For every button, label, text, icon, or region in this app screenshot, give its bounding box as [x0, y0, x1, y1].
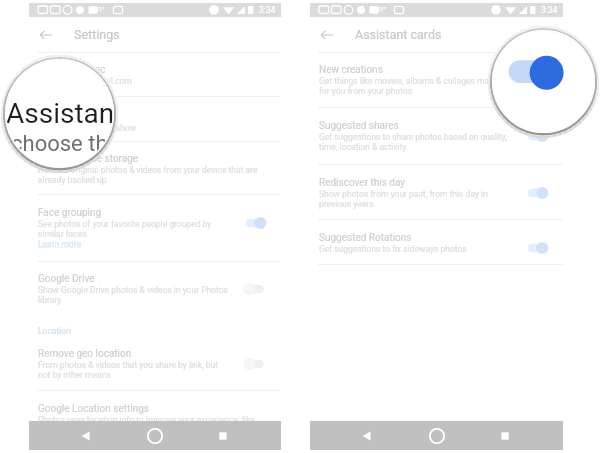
staticText: 3:34: [541, 5, 558, 15]
button[interactable]: Remove geo location: [29, 344, 281, 390]
button[interactable]: Suggested Rotations: [310, 220, 563, 264]
staticText: Get suggestions to fix sideways photos: [319, 244, 467, 254]
staticText: Suggested Rotations: [319, 232, 412, 244]
button[interactable]: Face grouping: [29, 195, 281, 261]
staticText: Remove original photos & videos from you…: [38, 165, 268, 185]
button[interactable]: Navigate up: [34, 23, 58, 47]
staticText: Google Location settings: [38, 403, 149, 415]
staticText: Get things like movies, albums & collage…: [319, 76, 509, 96]
staticText: Settings: [74, 27, 120, 42]
staticText: See photos of your favorite people group…: [38, 219, 228, 239]
staticText: Face grouping: [38, 207, 102, 219]
staticText: Photos uses location info to improve you…: [38, 415, 255, 425]
button[interactable]: Recent apps: [212, 425, 234, 447]
button[interactable]: Navigate up: [315, 23, 339, 47]
staticText: Rediscover this day: [319, 177, 406, 189]
staticText: Remove geo location: [38, 348, 132, 360]
staticText: Location: [38, 326, 71, 336]
staticText: Free up device storage: [38, 153, 139, 165]
staticText: Back up & sync: [38, 64, 106, 76]
button[interactable]: New creations: [310, 53, 563, 107]
staticText: Assistant cards: [355, 27, 442, 42]
staticText: Assistant cards: [38, 111, 108, 123]
button[interactable]: Back: [356, 425, 378, 447]
staticText: Suggested shares: [319, 120, 399, 132]
staticText: Get suggestions to share photos based on…: [319, 132, 509, 152]
button[interactable]: Assistant cards: [29, 97, 281, 141]
staticText: 51°: [95, 6, 105, 14]
button[interactable]: Free up device storage: [29, 142, 281, 194]
button[interactable]: Home: [425, 424, 449, 448]
staticText: ourchildejen@gmail.com: [38, 76, 132, 86]
staticText: Show Google Drive photos & videos in you…: [38, 285, 230, 305]
staticText: 51°: [376, 6, 386, 14]
button[interactable]: Back: [75, 425, 97, 447]
button[interactable]: Rediscover this day: [310, 165, 563, 219]
staticText: Assistant: [6, 97, 115, 163]
staticText: 3:34: [259, 5, 276, 15]
staticText: Learn more: [38, 239, 82, 249]
button[interactable]: Google Drive: [29, 262, 281, 322]
button[interactable]: Back up & sync: [29, 53, 281, 96]
staticText: Choose the cards to show: [38, 123, 137, 133]
button[interactable]: Google Location settings: [29, 391, 281, 421]
staticText: Google Drive: [38, 273, 95, 285]
staticText: New creations: [319, 64, 383, 76]
staticText: Show photos from your past, from this da…: [319, 189, 509, 209]
button[interactable]: Home: [143, 424, 167, 448]
button[interactable]: Suggested shares: [310, 108, 563, 164]
staticText: From photos & videos that you share by l…: [38, 360, 228, 380]
staticText: choose th: [11, 131, 108, 157]
button[interactable]: Recent apps: [494, 425, 516, 447]
